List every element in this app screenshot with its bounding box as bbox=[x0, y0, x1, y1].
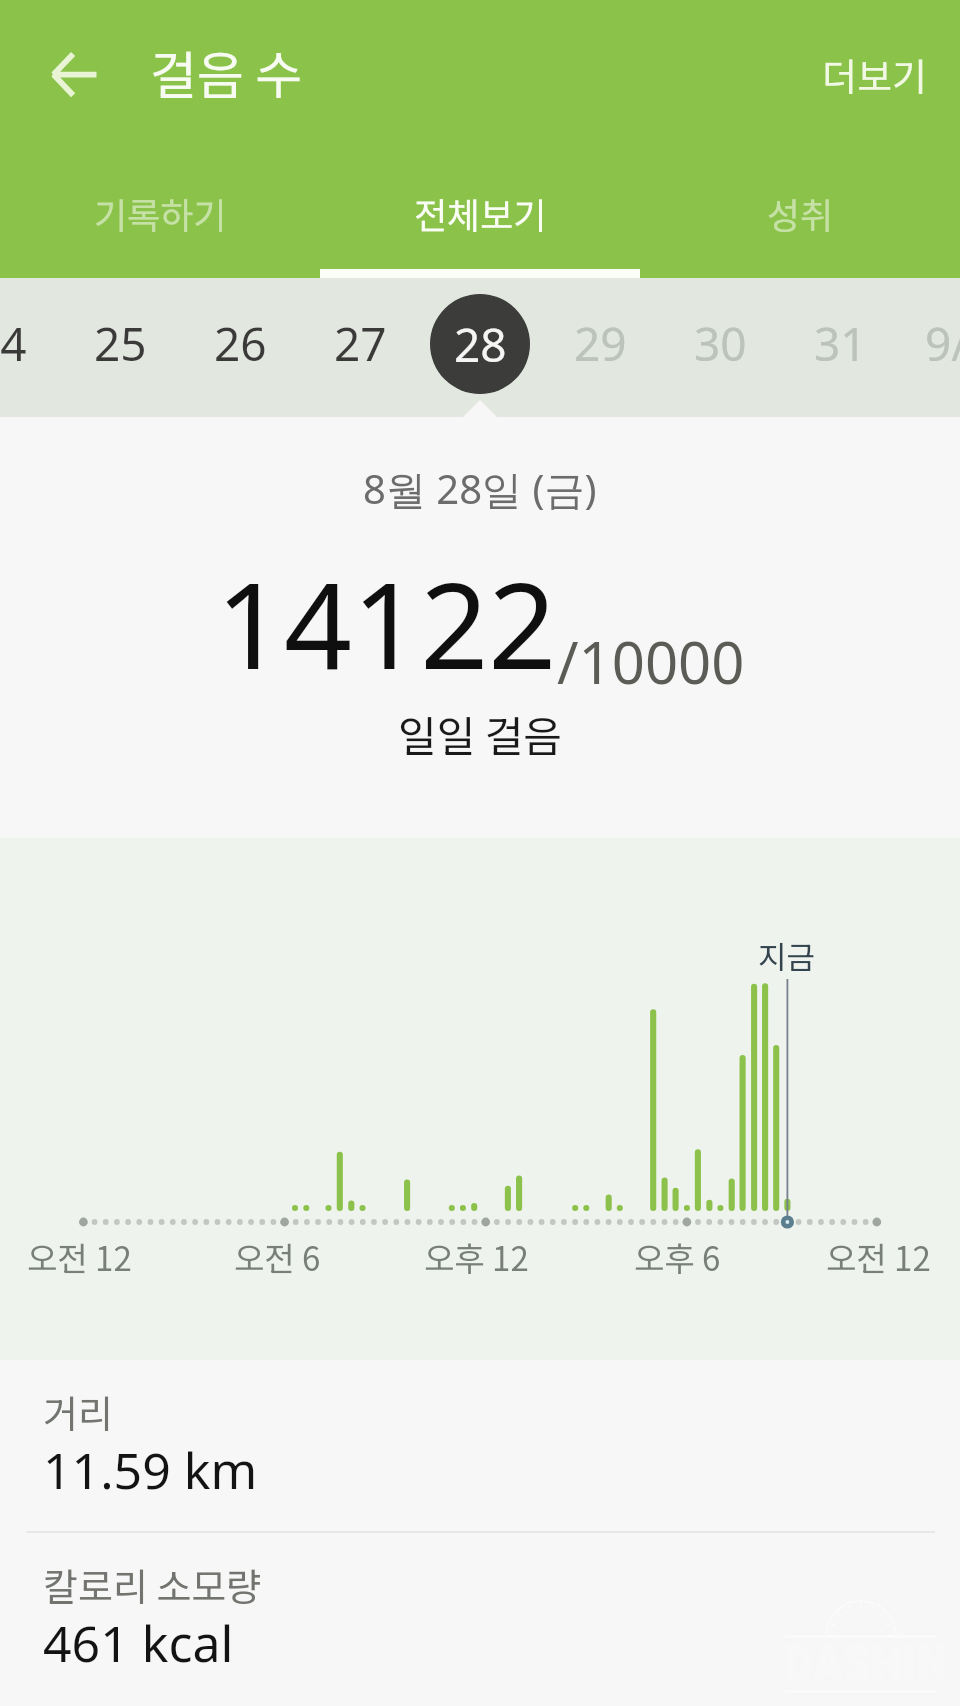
button[interactable]: 28 bbox=[420, 278, 540, 409]
button[interactable]: 30 bbox=[660, 278, 780, 409]
staticText: 거리 bbox=[43, 1384, 113, 1439]
staticText: 26 bbox=[214, 312, 267, 375]
staticText: 더보기 bbox=[822, 47, 927, 102]
button[interactable]: 성취 bbox=[640, 160, 960, 278]
staticText: 8월 28일 (금) bbox=[363, 461, 597, 516]
button[interactable]: 26 bbox=[180, 278, 300, 409]
button[interactable]: 전체보기 bbox=[320, 160, 640, 278]
staticText: 30 bbox=[694, 312, 747, 375]
button[interactable]: 25 bbox=[60, 278, 180, 409]
staticText: 9/1 bbox=[925, 312, 960, 375]
staticText: 29 bbox=[574, 312, 627, 375]
staticText: 기록하기 bbox=[94, 187, 227, 239]
button[interactable]: 9/1 bbox=[900, 278, 960, 409]
staticText: 25 bbox=[94, 312, 147, 375]
button[interactable]: 칼로리 소모량 bbox=[0, 1533, 960, 1706]
staticText: 일일 걸음 bbox=[398, 703, 562, 764]
button[interactable]: 거리 bbox=[0, 1360, 960, 1531]
button[interactable]: 29 bbox=[540, 278, 660, 409]
staticText: 27 bbox=[334, 312, 387, 375]
staticText: 오전 12 bbox=[826, 1233, 931, 1281]
staticText: 걸음 수 bbox=[150, 35, 303, 109]
staticText: 461 kcal bbox=[43, 1609, 234, 1677]
staticText: 전체보기 bbox=[414, 187, 547, 239]
staticText: 24 bbox=[0, 312, 27, 375]
button[interactable]: 31 bbox=[780, 278, 900, 409]
button[interactable]: 기록하기 bbox=[0, 160, 320, 278]
staticText: 31 bbox=[814, 312, 867, 375]
staticText: 오후 6 bbox=[634, 1233, 721, 1281]
staticText: 지금 bbox=[758, 933, 816, 978]
button[interactable]: 24 bbox=[0, 278, 60, 409]
staticText: 오전 12 bbox=[27, 1233, 132, 1281]
button[interactable]: Back bbox=[38, 38, 110, 110]
staticText: 오전 6 bbox=[234, 1233, 321, 1281]
staticText: 14122 bbox=[216, 542, 557, 704]
staticText: 칼로리 소모량 bbox=[43, 1557, 262, 1612]
staticText: 오후 12 bbox=[424, 1233, 529, 1281]
staticText: 성취 bbox=[767, 187, 834, 239]
staticText: /10000 bbox=[557, 622, 745, 701]
staticText: 28 bbox=[454, 313, 507, 376]
staticText: 11.59 km bbox=[43, 1436, 258, 1504]
button[interactable]: 더보기 bbox=[800, 38, 948, 110]
button[interactable]: 27 bbox=[300, 278, 420, 409]
